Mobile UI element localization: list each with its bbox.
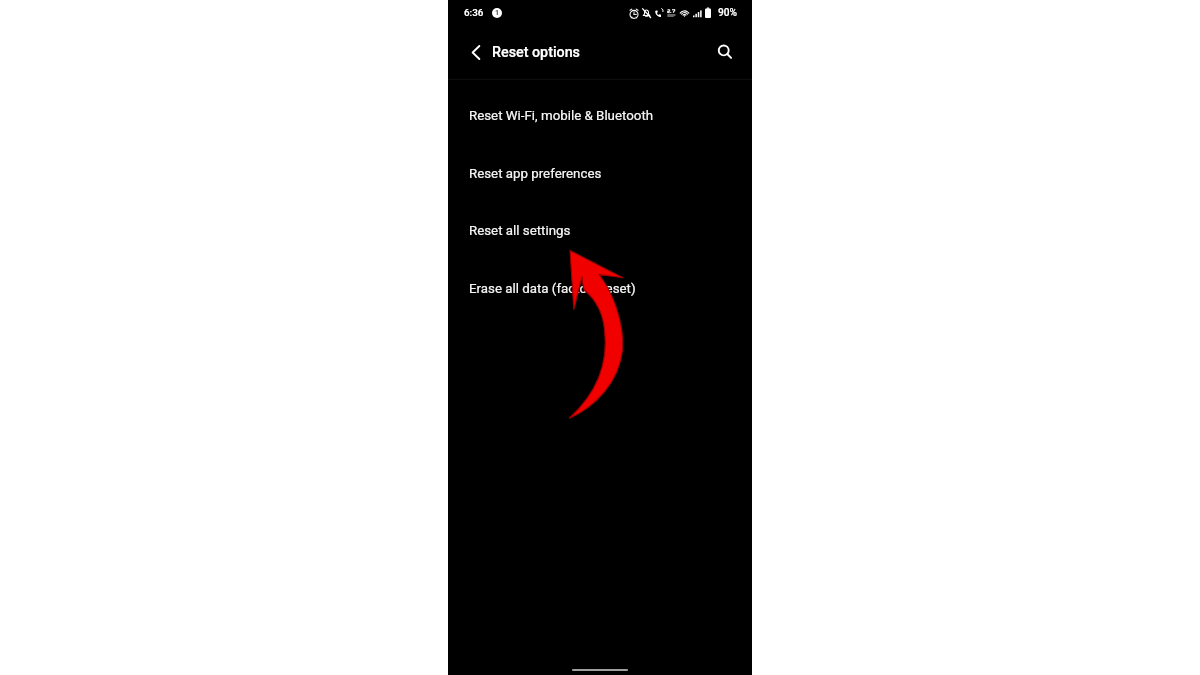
button[interactable]: Erase all data (factory reset)	[448, 260, 752, 317]
staticText: Reset app preferences	[469, 166, 602, 182]
staticText: 6:36	[464, 7, 484, 18]
staticText: Erase all data (factory reset)	[469, 281, 636, 297]
button[interactable]: Reset app preferences	[448, 145, 752, 202]
button[interactable]: Search	[711, 38, 739, 66]
staticText: 90%	[718, 7, 738, 19]
staticText: Reset options	[492, 44, 580, 61]
staticText: Reset all settings	[469, 223, 571, 239]
button[interactable]: Reset Wi-Fi, mobile & Bluetooth	[448, 87, 752, 144]
button[interactable]: Reset all settings	[448, 202, 752, 259]
staticText: 1	[495, 9, 500, 17]
staticText: Reset Wi-Fi, mobile & Bluetooth	[469, 108, 654, 124]
button[interactable]: Back	[462, 38, 490, 66]
